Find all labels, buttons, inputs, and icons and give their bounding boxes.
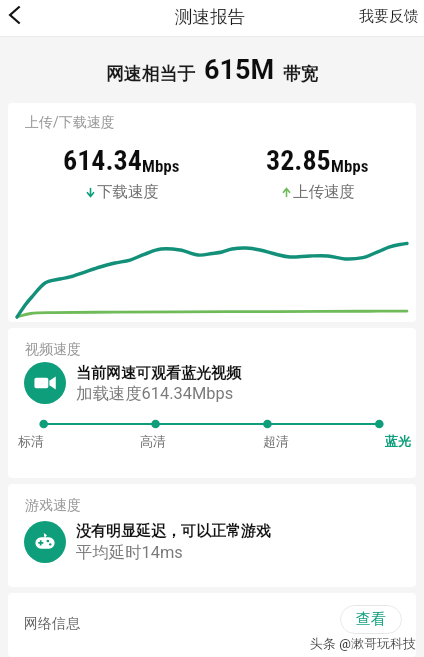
- staticText: 没有明显延迟，可以正常游戏: [76, 522, 271, 541]
- staticText: 当前网速可观看蓝光视频: [76, 364, 241, 383]
- staticText: 标清: [18, 433, 44, 449]
- staticText: 上传速度: [293, 182, 355, 202]
- button[interactable]: 超清: [259, 433, 293, 449]
- button[interactable]: Back: [0, 0, 32, 30]
- button[interactable]: 蓝光: [381, 433, 415, 449]
- staticText: 615M: [204, 54, 275, 86]
- button[interactable]: 高清: [136, 433, 170, 449]
- staticText: 我要反馈: [359, 7, 419, 26]
- staticText: 高清: [140, 433, 166, 449]
- staticText: 带宽: [283, 63, 319, 85]
- staticText: 游戏速度: [25, 497, 81, 515]
- staticText: 32.85: [266, 144, 331, 177]
- staticText: Mbps: [331, 156, 369, 176]
- staticText: 头条 @漱哥玩科技: [310, 635, 416, 651]
- staticText: 上传/下载速度: [25, 114, 115, 132]
- staticText: 下载速度: [97, 182, 159, 202]
- button[interactable]: 我要反馈: [359, 7, 419, 26]
- staticText: 网络信息: [24, 615, 80, 633]
- staticText: 查看: [356, 610, 386, 629]
- button[interactable]: 查看: [340, 605, 402, 634]
- staticText: 614.34: [63, 144, 142, 177]
- button[interactable]: 标清: [14, 433, 48, 449]
- staticText: 超清: [263, 433, 289, 449]
- staticText: 视频速度: [25, 341, 81, 359]
- staticText: 加载速度614.34Mbps: [76, 383, 234, 404]
- staticText: 测速报告: [175, 6, 246, 28]
- staticText: 蓝光: [385, 433, 411, 449]
- staticText: 平均延时14ms: [76, 542, 183, 563]
- staticText: 网速相当于: [106, 63, 195, 85]
- staticText: Mbps: [142, 156, 180, 176]
